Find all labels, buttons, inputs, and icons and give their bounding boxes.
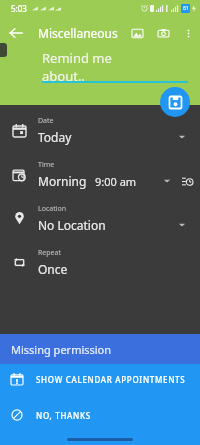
button[interactable]: Take photo: [150, 20, 176, 46]
staticText: Time: [38, 160, 55, 170]
staticText: No Location: [38, 217, 106, 233]
button[interactable]: SHOW CALENDAR APPOINTMENTS: [0, 364, 200, 394]
button[interactable]: Add image: [124, 20, 150, 46]
button[interactable]: More options: [176, 21, 200, 45]
button[interactable]: NO, THANKS: [0, 402, 200, 428]
staticText: about..: [42, 67, 85, 85]
staticText: 9:00 am: [95, 174, 137, 189]
button[interactable]: Repeat: [0, 245, 200, 279]
staticText: Miscellaneous: [38, 25, 118, 41]
staticText: 61: [183, 5, 189, 12]
staticText: Once: [38, 261, 68, 277]
staticText: Repeat: [38, 248, 62, 258]
staticText: Date: [38, 116, 54, 126]
staticText: Location: [38, 204, 67, 214]
staticText: 5:03: [11, 3, 27, 14]
button[interactable]: Date: [0, 113, 200, 147]
staticText: Missing permission: [11, 342, 112, 357]
staticText: Morning: [38, 173, 87, 189]
staticText: SHOW CALENDAR APPOINTMENTS: [36, 374, 186, 385]
staticText: Remind me: [42, 49, 112, 67]
button[interactable]: Back: [0, 17, 32, 49]
staticText: Today: [38, 129, 72, 145]
button[interactable]: Set alarm: [181, 175, 194, 188]
button[interactable]: Save reminder: [160, 87, 190, 117]
button[interactable]: Location: [0, 201, 200, 235]
staticText: NO, THANKS: [36, 410, 91, 421]
button[interactable]: Time: [0, 157, 200, 191]
